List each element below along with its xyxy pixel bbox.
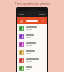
button[interactable]: [17, 48, 47, 56]
button[interactable]: [17, 32, 47, 40]
button[interactable]: Menu: [17, 17, 47, 24]
button[interactable]: [17, 56, 47, 64]
button[interactable]: [17, 64, 47, 72]
button[interactable]: [17, 24, 47, 32]
staticText: Time grades into photos: [15, 2, 50, 6]
button[interactable]: Search: [41, 19, 45, 23]
button[interactable]: Menu: [19, 19, 23, 23]
button[interactable]: [17, 40, 47, 48]
